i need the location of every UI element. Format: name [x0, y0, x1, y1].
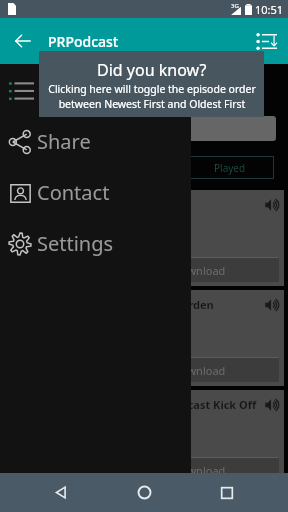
button[interactable]: Back [6, 24, 40, 58]
staticText: Part 5: Fixing the Car [77, 197, 192, 212]
staticText: Podcast Kick Off [167, 397, 257, 412]
staticText: Download [173, 363, 226, 378]
button[interactable]: Sort order [250, 25, 282, 57]
staticText: Download [173, 463, 226, 478]
staticText: 3G [231, 2, 239, 10]
button[interactable]: Recents [205, 473, 249, 512]
button[interactable]: Share [0, 116, 191, 167]
button[interactable]: Download [5, 258, 279, 282]
staticText: Did you know? [97, 59, 207, 81]
button[interactable]: Download [5, 458, 279, 482]
staticText: Clicking here will toggle the episode or… [48, 82, 256, 111]
button[interactable]: Part 5: Fixing the Car [4, 190, 284, 286]
staticText: PRPodcast [48, 32, 119, 51]
button[interactable]: Settings [0, 218, 191, 269]
button[interactable]: Podcast Kick Off [4, 390, 284, 486]
staticText: 10:51 [255, 2, 284, 17]
button[interactable]: Episodes [0, 64, 191, 116]
staticText: Contact [37, 179, 110, 206]
staticText: Part 4: In the Garden [100, 297, 214, 312]
button[interactable]: Did you know? [39, 51, 264, 117]
staticText: Played [214, 161, 246, 175]
button[interactable] [12, 116, 276, 141]
button[interactable]: Back [39, 473, 83, 512]
button[interactable]: Home [122, 473, 166, 512]
staticText: Download [173, 263, 226, 278]
button[interactable]: Contact [0, 167, 191, 218]
button[interactable]: Played [185, 156, 274, 179]
button[interactable]: Download [5, 358, 279, 382]
staticText: Share [37, 128, 91, 155]
staticText: Settings [37, 230, 114, 257]
button[interactable]: Part 4: In the Garden [4, 290, 284, 386]
